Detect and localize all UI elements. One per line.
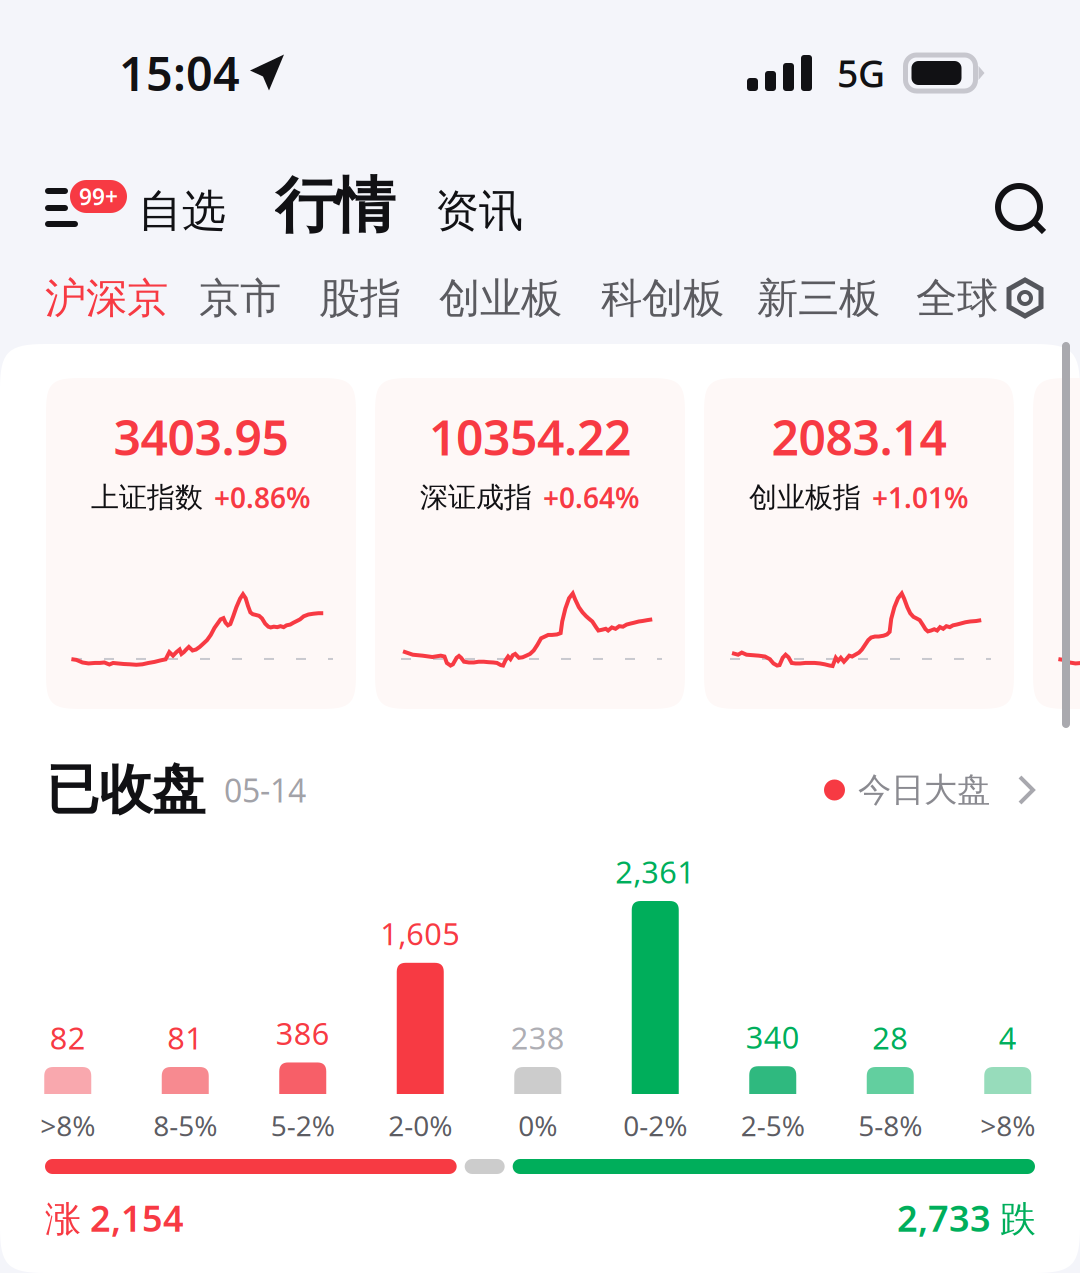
staticText: 已收盘 <box>46 757 205 823</box>
staticText: 2,361 <box>615 851 695 892</box>
button[interactable]: 股指 <box>311 261 409 336</box>
button[interactable]: 资讯 <box>421 174 537 248</box>
staticText: 3403.95 <box>113 405 288 469</box>
staticText: 行情 <box>275 169 395 243</box>
staticText: 创业板 <box>439 273 562 324</box>
staticText: 2-0% <box>388 1107 452 1144</box>
staticText: 新三板 <box>757 273 880 324</box>
button[interactable]: 沪深京 <box>37 261 176 336</box>
button[interactable]: 1218.66 <box>1033 378 1080 709</box>
button[interactable]: 科创板 <box>593 261 732 336</box>
staticText: 1,605 <box>380 913 460 954</box>
button[interactable]: 全球 <box>908 261 1006 336</box>
staticText: 05-14 <box>224 769 306 811</box>
staticText: 深证成指 <box>420 480 532 514</box>
staticText: +0.64% <box>543 479 640 516</box>
staticText: >8% <box>40 1107 95 1144</box>
button[interactable]: Settings <box>999 271 1051 325</box>
staticText: 全球 <box>916 273 998 324</box>
staticText: 4 <box>999 1017 1017 1058</box>
staticText: 340 <box>746 1016 800 1057</box>
staticText: +1.01% <box>872 479 969 516</box>
button[interactable]: 今日大盘 <box>824 769 1036 810</box>
staticText: 京市 <box>199 273 281 324</box>
staticText: 2-5% <box>741 1107 805 1144</box>
staticText: 上证指数 <box>91 480 203 514</box>
button[interactable]: 10354.22 <box>375 378 685 709</box>
button[interactable]: Search <box>990 178 1055 243</box>
staticText: 8-5% <box>153 1107 217 1144</box>
staticText: 沪深京 <box>45 273 168 324</box>
staticText: >8% <box>980 1107 1035 1144</box>
button[interactable]: 2083.14 <box>704 378 1014 709</box>
staticText: 10354.22 <box>429 405 631 469</box>
staticText: 2083.14 <box>771 405 946 469</box>
staticText: 81 <box>167 1017 203 1058</box>
staticText: 股指 <box>319 273 401 324</box>
button[interactable]: Menu <box>45 180 137 237</box>
button[interactable]: 创业板 <box>431 261 570 336</box>
staticText: 0% <box>518 1107 557 1144</box>
staticText: 28 <box>872 1017 908 1058</box>
staticText: 5-8% <box>858 1107 922 1144</box>
staticText: 5G <box>837 48 885 98</box>
staticText: 科创板 <box>601 273 724 324</box>
staticText: 今日大盘 <box>858 769 990 810</box>
button[interactable]: 新三板 <box>749 261 888 336</box>
staticText: 238 <box>511 1017 565 1058</box>
staticText: 82 <box>50 1017 86 1058</box>
button[interactable]: 自选 <box>124 174 240 248</box>
staticText: 自选 <box>138 184 226 238</box>
button[interactable]: 3403.95 <box>46 378 356 709</box>
staticText: +0.86% <box>214 479 311 516</box>
staticText: 2,733 跌 <box>897 1194 1036 1242</box>
staticText: 0-2% <box>623 1107 687 1144</box>
staticText: 5-2% <box>271 1107 335 1144</box>
staticText: 386 <box>276 1013 330 1053</box>
staticText: 资讯 <box>435 184 523 238</box>
button[interactable]: 行情 <box>261 163 409 249</box>
staticText: 涨 2,154 <box>45 1194 184 1242</box>
staticText: 创业板指 <box>749 480 861 514</box>
staticText: 99+ <box>79 181 118 211</box>
button[interactable]: 京市 <box>191 261 289 336</box>
staticText: 15:04 <box>119 42 240 104</box>
